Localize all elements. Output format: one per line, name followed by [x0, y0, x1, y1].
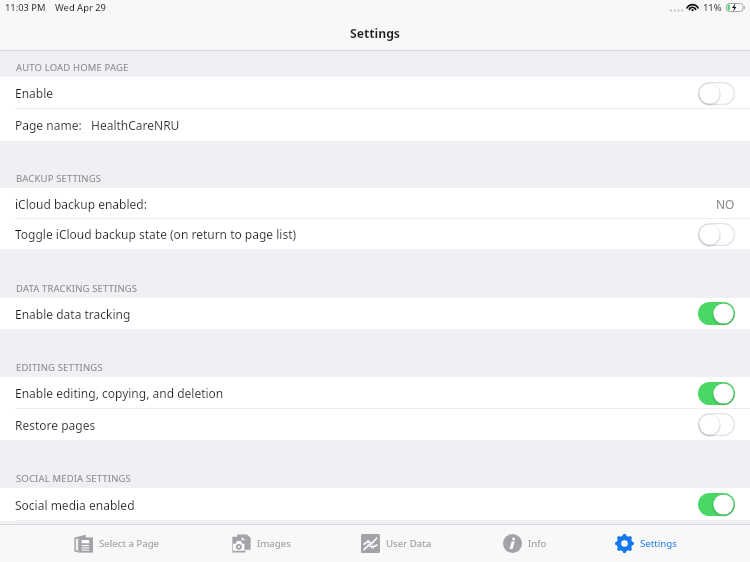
button[interactable]: Settings [615, 524, 677, 562]
staticText: Restore pages [15, 417, 96, 433]
button[interactable]: Switch off [698, 223, 735, 246]
button[interactable]: Page name: [0, 109, 750, 141]
staticText: Enable editing, copying, and deletion [15, 385, 224, 401]
staticText: Select a Page [99, 537, 160, 550]
button[interactable]: Enable editing, copying, and deletion [0, 377, 750, 409]
staticText: User Data [386, 537, 432, 550]
staticText: DATA TRACKING SETTINGS [16, 282, 138, 295]
staticText: BACKUP SETTINGS [16, 172, 102, 185]
staticText: Enable data tracking [15, 306, 131, 322]
staticText: Images [257, 537, 291, 550]
staticText: Info [528, 537, 547, 550]
staticText: iCloud backup enabled: [15, 196, 147, 212]
button[interactable]: Switch on [698, 382, 735, 405]
staticText: Settings [640, 537, 677, 550]
button[interactable]: Info [503, 524, 547, 562]
staticText: 11:03 PM [5, 1, 46, 14]
staticText: NO [716, 196, 735, 212]
staticText: Social media enabled [15, 497, 135, 513]
button[interactable]: User Data [361, 524, 432, 562]
staticText: Toggle iCloud backup state (on return to… [15, 226, 297, 242]
button[interactable]: Images [232, 524, 291, 562]
button[interactable]: Switch off [698, 82, 735, 105]
button[interactable]: Toggle iCloud backup state (on return to… [0, 219, 750, 249]
staticText: HealthCareNRU [91, 117, 180, 133]
button[interactable]: Restore pages [0, 409, 750, 440]
button[interactable]: Select a Page [74, 524, 160, 562]
button[interactable]: Enable [0, 77, 750, 109]
staticText: Settings [350, 25, 400, 42]
staticText: SOCIAL MEDIA SETTINGS [16, 472, 131, 485]
button[interactable]: iCloud backup enabled: [0, 188, 750, 219]
staticText: Wed Apr 29 [55, 1, 106, 14]
staticText: EDITING SETTINGS [16, 361, 103, 374]
button[interactable]: Switch off [698, 413, 735, 436]
button[interactable]: Switch on [698, 302, 735, 325]
button[interactable]: Social media enabled [0, 488, 750, 521]
staticText: AUTO LOAD HOME PAGE [16, 61, 129, 74]
staticText: Enable [15, 85, 54, 101]
staticText: 11% [703, 1, 722, 14]
button[interactable]: Switch on [698, 493, 735, 516]
button[interactable]: Enable data tracking [0, 298, 750, 329]
staticText: Page name: [15, 117, 82, 133]
